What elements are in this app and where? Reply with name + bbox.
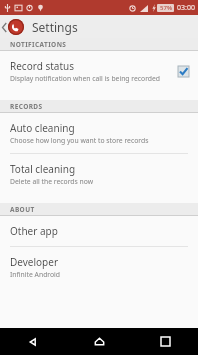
staticText: Record status [10,59,74,73]
button[interactable]: Auto cleaning [0,113,198,153]
staticText: 03:00 [177,3,195,13]
staticText: Other app [10,224,58,238]
button[interactable]: Navigate up [2,16,24,38]
button[interactable]: Back [0,328,66,355]
button[interactable]: Home [66,328,132,355]
staticText: RECORDS [10,102,43,111]
staticText: Settings [32,19,78,35]
button[interactable]: Recent apps [132,328,198,355]
staticText: Delete all the records now [10,177,94,186]
staticText: Choose how long you want to store record… [10,136,149,145]
staticText: ABOUT [10,205,35,214]
staticText: 57% [160,4,172,12]
staticText: Infinite Android [10,270,61,279]
staticText: Total cleaning [10,162,76,176]
button[interactable]: Total cleaning [0,154,198,194]
staticText: NOTIFICATIONS [10,40,67,49]
button[interactable]: Record status [0,51,198,91]
staticText: Developer [10,255,59,269]
staticText: Display notification when call is being … [10,74,161,83]
staticText: Auto cleaning [10,121,75,135]
button[interactable]: Record status toggle [177,65,190,78]
button[interactable]: Developer [0,247,198,287]
button[interactable]: Other app [0,216,198,246]
